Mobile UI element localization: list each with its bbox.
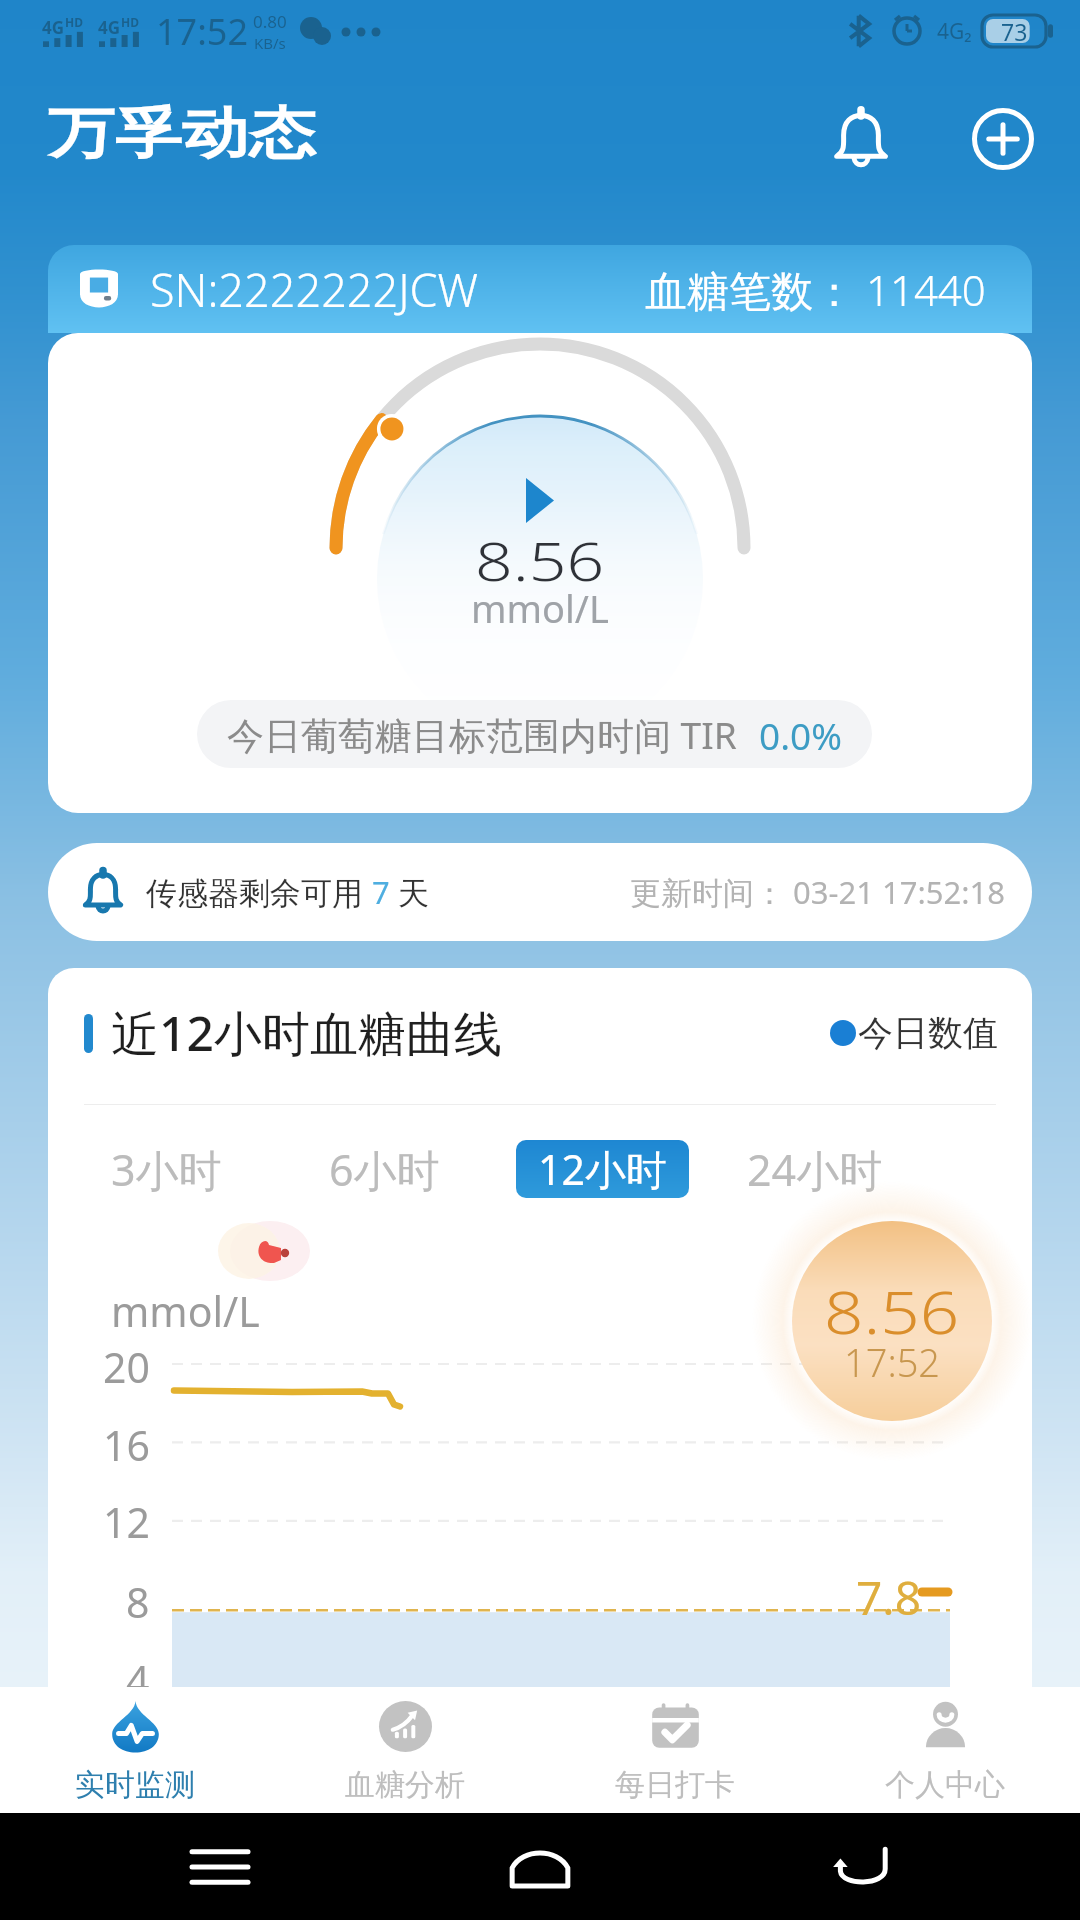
staticText: 24小时 [747,1140,883,1198]
staticText: 0.0% [759,710,842,760]
staticText: 17:52 [156,7,249,56]
staticText: 8.56 [824,1270,960,1349]
staticText: HD [65,14,83,30]
staticText: 4 [126,1652,150,1687]
staticText: 12 [103,1494,150,1544]
staticText: 近12小时血糖曲线 [111,1000,502,1066]
staticText: 今日数值 [858,1011,998,1055]
staticText: HD [121,14,139,30]
staticText: 传感器剩余可用 [146,871,372,913]
button[interactable]: Recents [180,1827,260,1907]
staticText: mmol/L [111,1283,260,1333]
staticText: 4G [42,16,65,39]
staticText: 20 [103,1339,150,1389]
button[interactable]: 传感器剩余可用 [48,843,1032,941]
staticText: 7 [372,871,390,913]
staticText: 更新时间： 03-21 17:52:18 [630,871,1006,913]
staticText: 73 [1001,16,1028,47]
staticText: 0.80 [253,10,287,33]
staticText: 4G₂ [937,17,972,46]
staticText: 实时监测 [75,1766,195,1804]
staticText: 12小时 [538,1141,667,1197]
staticText: 万孚动态 [48,99,316,167]
button[interactable]: 血糖分析 [270,1687,540,1813]
button[interactable]: 24小时 [725,1140,905,1198]
staticText: 血糖笔数： 11440 [645,261,986,318]
button[interactable]: 3小时 [89,1140,244,1198]
staticText: 每日打卡 [615,1766,735,1804]
staticText: 天 [390,871,430,913]
staticText: 16 [103,1417,150,1467]
staticText: 今日葡萄糖目标范围内时间 TIR [227,709,737,760]
staticText: 3小时 [111,1140,222,1198]
staticText: 6小时 [329,1140,440,1198]
button[interactable]: Home [500,1827,580,1907]
staticText: 8 [126,1574,150,1624]
button[interactable]: 每日打卡 [540,1687,810,1813]
button[interactable]: 实时监测 [0,1687,270,1813]
staticText: 7.8 [856,1566,921,1616]
staticText: SN:2222222JCW [150,259,479,320]
staticText: 个人中心 [885,1766,1005,1804]
button[interactable]: 个人中心 [810,1687,1080,1813]
button[interactable]: Notifications [816,94,906,184]
staticText: 4G [98,16,121,39]
staticText: KB/s [254,33,286,53]
button[interactable]: Back [820,1827,900,1907]
staticText: 17:52 [844,1336,941,1388]
staticText: mmol/L [471,582,609,634]
button[interactable]: Add [958,94,1048,184]
button[interactable]: 今日葡萄糖目标范围内时间 TIR [197,700,872,768]
staticText: 8.56 [475,522,605,590]
button[interactable]: 12小时 [516,1140,689,1198]
button[interactable]: 6小时 [307,1140,462,1198]
staticText: 血糖分析 [345,1766,465,1804]
